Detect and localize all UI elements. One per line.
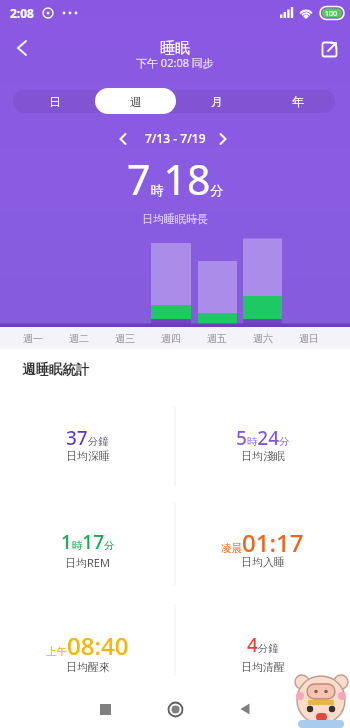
staticText: 日均入睡 (241, 555, 285, 569)
staticText: 睡眠 (160, 39, 190, 58)
staticText: 日均深睡 (66, 449, 110, 463)
button[interactable] (215, 690, 275, 728)
staticText: 日均清醒 (241, 660, 285, 674)
button[interactable]: 日 (14, 88, 95, 114)
staticText: 週四 (161, 332, 181, 345)
staticText: 7時18分 (127, 151, 224, 207)
button[interactable] (314, 34, 344, 64)
staticText: 凌晨01:17 (221, 526, 304, 559)
staticText: 月 (211, 94, 223, 109)
staticText: 年 (292, 94, 304, 109)
staticText: 7/13 - 7/19 (145, 130, 206, 146)
button[interactable]: 37分鐘 (0, 416, 175, 460)
button[interactable]: 年 (257, 88, 338, 114)
staticText: 4分鐘 (247, 632, 279, 658)
staticText: 週六 (253, 332, 273, 345)
staticText: 上午08:40 (46, 629, 129, 662)
staticText: 日均醒來 (66, 660, 110, 674)
staticText: 2:08 (10, 5, 34, 21)
staticText: 週五 (207, 332, 227, 345)
button[interactable]: 4分鐘 (175, 623, 350, 667)
staticText: 週日 (299, 332, 319, 345)
button[interactable] (212, 128, 234, 150)
staticText: 37分鐘 (66, 425, 109, 451)
staticText: 下午 02:08 同步 (136, 55, 214, 70)
staticText: 週 (130, 94, 142, 109)
button[interactable]: 5時24分 (175, 416, 350, 460)
button[interactable]: 月 (176, 88, 257, 114)
staticText: 5時24分 (236, 425, 290, 451)
button[interactable] (145, 690, 205, 728)
staticText: 週一 (23, 332, 43, 345)
staticText: 週睡眠統計 (22, 361, 90, 378)
button[interactable]: 週 (95, 88, 176, 114)
staticText: 100 (325, 9, 338, 19)
button[interactable] (8, 34, 36, 62)
staticText: 週三 (115, 332, 135, 345)
button[interactable]: 凌晨01:17 (175, 520, 350, 564)
staticText: 日均淺眠 (241, 449, 285, 463)
button[interactable] (112, 128, 134, 150)
button[interactable]: 1時17分 (0, 520, 175, 564)
staticText: 日均睡眠時長 (142, 212, 208, 226)
staticText: 週二 (69, 332, 89, 345)
button[interactable]: 上午08:40 (0, 623, 175, 667)
button[interactable] (75, 690, 135, 728)
staticText: 日 (49, 94, 61, 109)
staticText: 1時17分 (61, 529, 115, 555)
staticText: 日均REM (65, 555, 110, 570)
